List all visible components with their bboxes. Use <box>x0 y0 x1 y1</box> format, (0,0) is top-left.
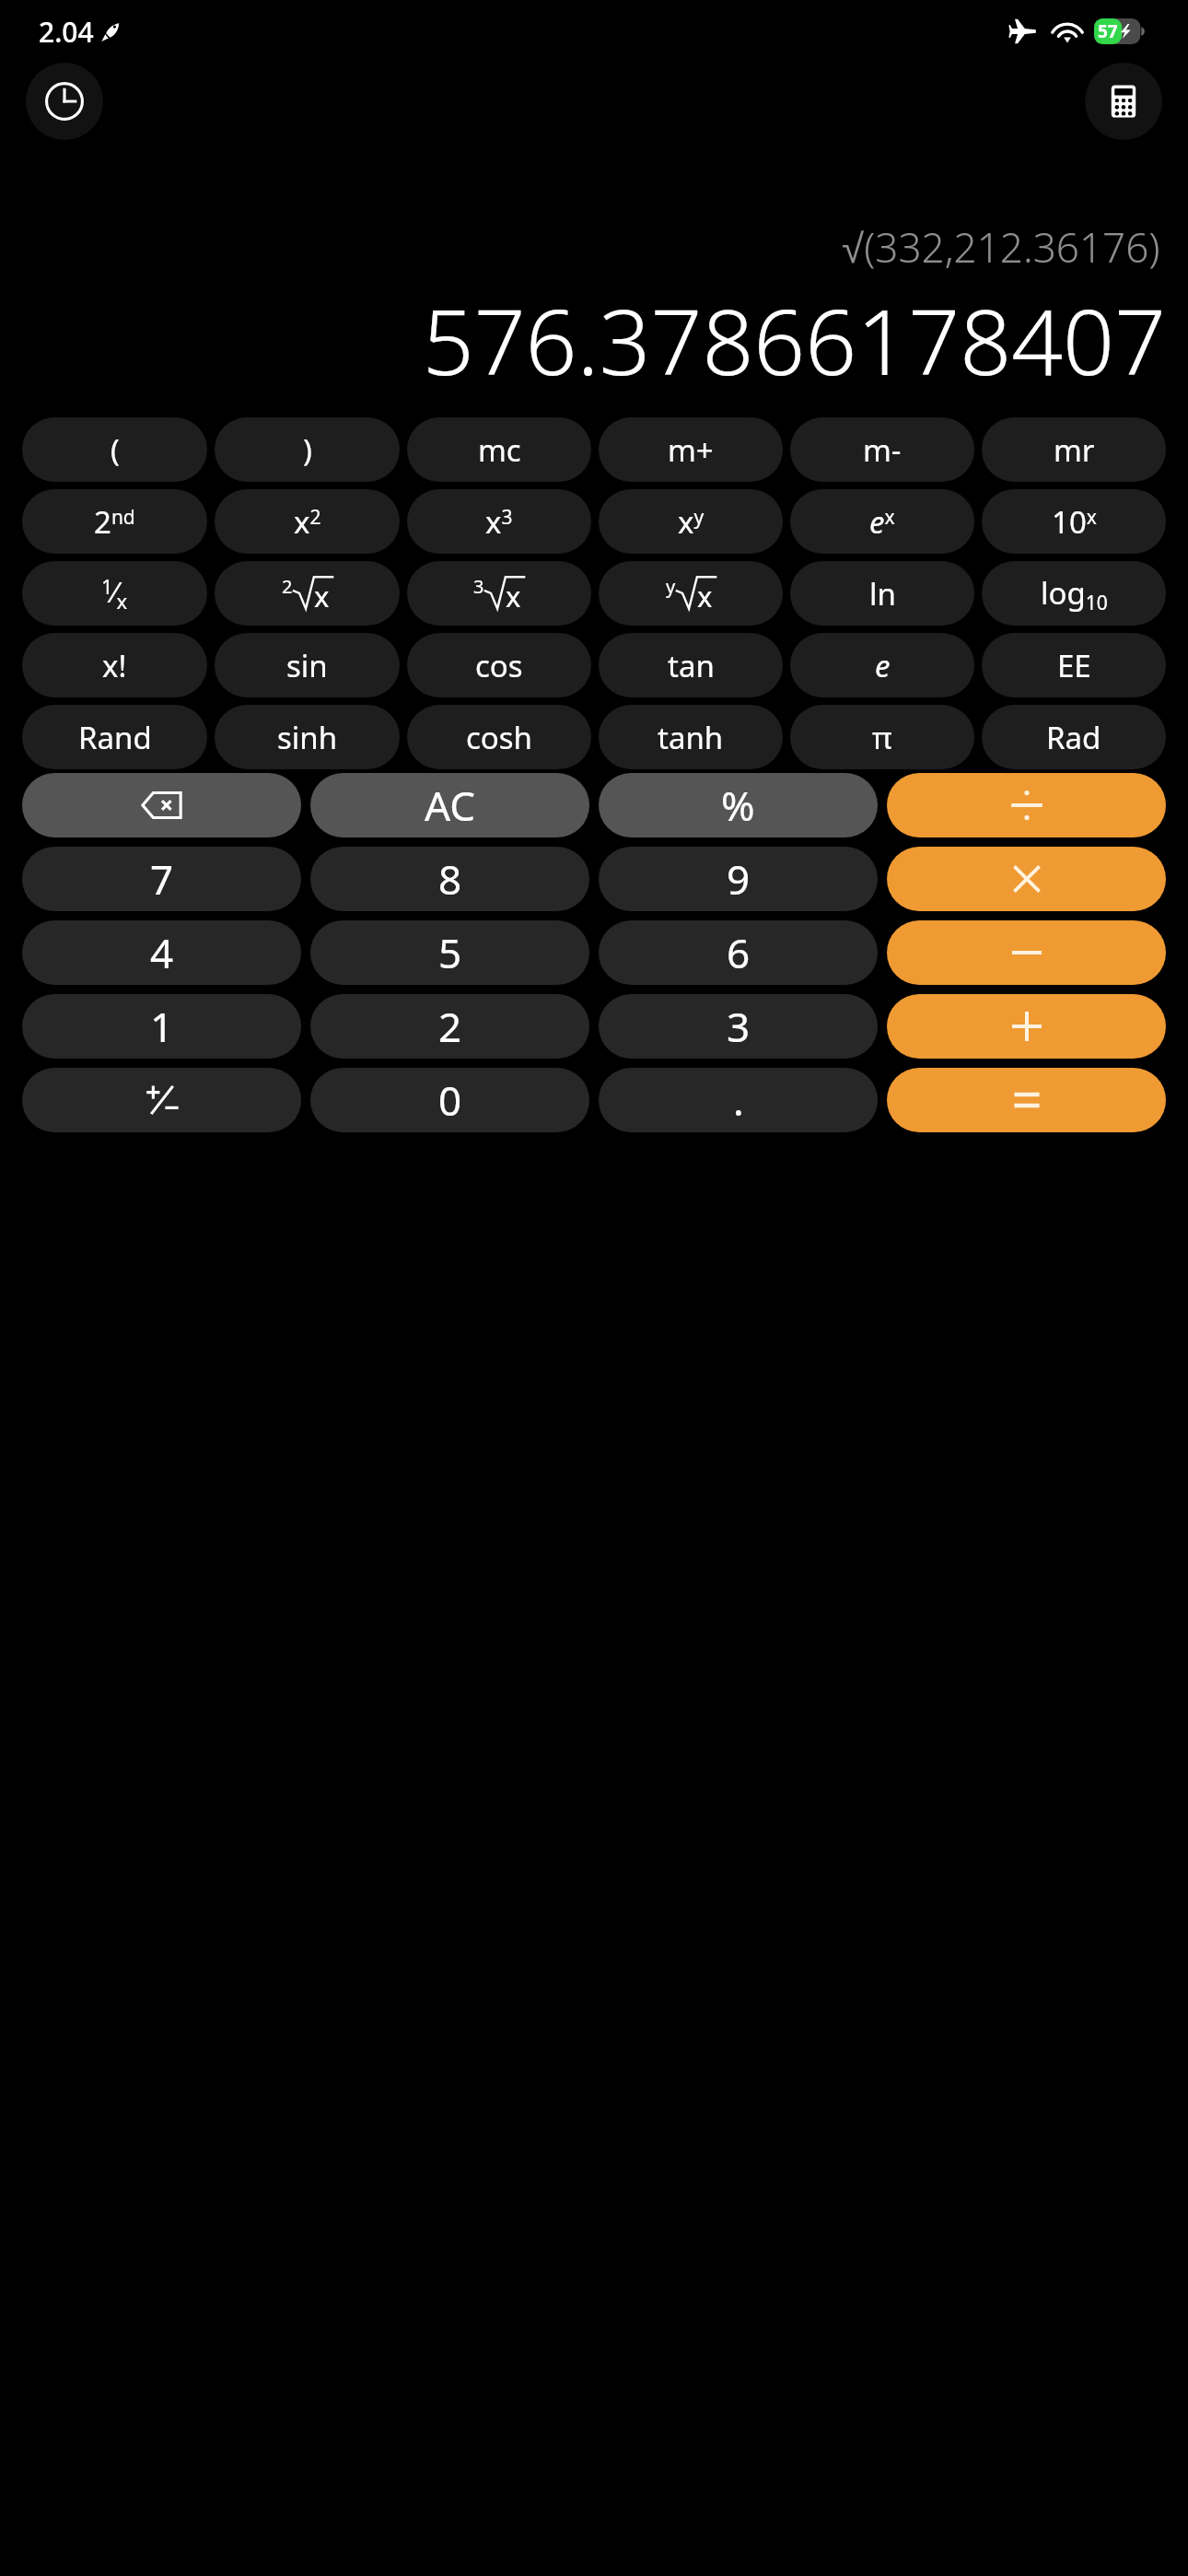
staticText: x <box>697 577 713 615</box>
button[interactable]: tan <box>599 633 783 697</box>
staticText: tanh <box>658 717 724 758</box>
staticText: 57 <box>1098 19 1118 43</box>
staticText: x <box>314 577 330 615</box>
staticText: 1⁄x <box>101 572 128 615</box>
button[interactable]: mc <box>407 417 591 482</box>
button[interactable]: Subtract <box>887 920 1166 985</box>
button[interactable]: 10x <box>982 489 1166 554</box>
button[interactable]: sin <box>215 633 400 697</box>
button[interactable]: Plus minus <box>22 1068 301 1132</box>
staticText: x2 <box>294 501 321 543</box>
button[interactable]: x3 <box>407 489 591 554</box>
staticText: Rand <box>78 717 152 758</box>
staticText: % <box>721 778 755 833</box>
button[interactable]: 6 <box>599 920 878 985</box>
button[interactable]: m- <box>790 417 974 482</box>
staticText: cosh <box>466 717 533 758</box>
button[interactable]: . <box>599 1068 878 1132</box>
button[interactable]: sinh <box>215 705 400 769</box>
button[interactable]: 3 <box>599 994 878 1059</box>
staticText: 7 <box>150 851 174 907</box>
button[interactable]: x2 <box>215 489 400 554</box>
staticText: 10x <box>1052 501 1097 543</box>
staticText: 0 <box>438 1072 462 1128</box>
button[interactable]: cosh <box>407 705 591 769</box>
staticText: 3 <box>473 574 484 599</box>
staticText: Rad <box>1046 717 1101 758</box>
button[interactable]: 2nd <box>22 489 207 554</box>
button[interactable]: log10 <box>982 561 1166 626</box>
button[interactable]: mr <box>982 417 1166 482</box>
staticText: sinh <box>277 717 338 758</box>
button[interactable]: xy <box>599 489 783 554</box>
staticText: e <box>875 645 891 686</box>
button[interactable]: 8 <box>310 847 589 911</box>
staticText: xy <box>678 501 705 543</box>
button[interactable]: m+ <box>599 417 783 482</box>
staticText: tan <box>668 645 715 686</box>
button[interactable]: e <box>790 633 974 697</box>
button[interactable]: Rand <box>22 705 207 769</box>
button[interactable]: Rad <box>982 705 1166 769</box>
staticText: ex <box>869 501 895 543</box>
staticText: ln <box>869 573 896 615</box>
staticText: m- <box>863 429 902 471</box>
staticText: π <box>872 717 892 758</box>
button[interactable]: 0 <box>310 1068 589 1132</box>
button[interactable]: Multiply <box>887 847 1166 911</box>
button[interactable]: 1 <box>22 994 301 1059</box>
button[interactable]: 4 <box>22 920 301 985</box>
staticText: 576.37866178407 <box>22 278 1166 401</box>
staticText: x! <box>102 645 127 686</box>
staticText: 2 <box>282 574 293 599</box>
button[interactable]: Delete <box>22 773 301 837</box>
button[interactable]: 5 <box>310 920 589 985</box>
button[interactable]: History <box>26 63 103 140</box>
staticText: 5 <box>438 925 462 980</box>
button[interactable]: ( <box>22 417 207 482</box>
button[interactable]: 2 <box>215 561 400 626</box>
button[interactable]: ln <box>790 561 974 626</box>
button[interactable]: AC <box>310 773 589 837</box>
button[interactable]: ) <box>215 417 400 482</box>
staticText: AC <box>425 778 476 833</box>
staticText: log10 <box>1041 572 1108 615</box>
button[interactable]: tanh <box>599 705 783 769</box>
button[interactable]: 9 <box>599 847 878 911</box>
button[interactable]: 3 <box>407 561 591 626</box>
button[interactable]: ex <box>790 489 974 554</box>
staticText: 6 <box>727 925 751 980</box>
button[interactable]: Divide <box>887 773 1166 837</box>
button[interactable]: % <box>599 773 878 837</box>
button[interactable]: EE <box>982 633 1166 697</box>
staticText: ) <box>303 429 312 471</box>
button[interactable]: x! <box>22 633 207 697</box>
staticText: ( <box>111 429 120 471</box>
button[interactable]: cos <box>407 633 591 697</box>
button[interactable]: y <box>599 561 783 626</box>
button[interactable]: π <box>790 705 974 769</box>
button[interactable]: Add <box>887 994 1166 1059</box>
staticText: 3 <box>727 999 751 1054</box>
staticText: 4 <box>150 925 174 980</box>
button[interactable]: Calculator mode <box>1085 63 1162 140</box>
staticText: 9 <box>727 851 751 907</box>
staticText: 2.04 <box>39 13 94 51</box>
staticText: mr <box>1054 429 1095 471</box>
staticText: mc <box>478 429 521 471</box>
staticText: y <box>666 574 676 599</box>
staticText: sin <box>286 645 328 686</box>
staticText: . <box>733 1072 744 1128</box>
button[interactable]: Equals <box>887 1068 1166 1132</box>
button[interactable]: 7 <box>22 847 301 911</box>
staticText: x <box>506 577 521 615</box>
staticText: m+ <box>668 429 714 471</box>
staticText: 8 <box>438 851 462 907</box>
staticText: cos <box>475 645 523 686</box>
staticText: x3 <box>485 501 513 543</box>
staticText: 2 <box>438 999 462 1054</box>
staticText: √(332,212.36176) <box>842 219 1160 275</box>
button[interactable]: 1⁄x <box>22 561 207 626</box>
staticText: 2nd <box>94 501 135 543</box>
button[interactable]: 2 <box>310 994 589 1059</box>
